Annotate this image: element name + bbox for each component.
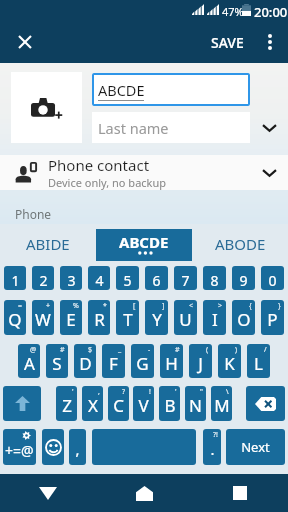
button[interactable]: R: [88, 300, 110, 335]
button[interactable]: T: [116, 300, 139, 335]
button[interactable]: 7: [174, 266, 197, 290]
button[interactable]: ABCDE: [96, 229, 192, 261]
staticText: I: [212, 308, 218, 331]
staticText: ): [235, 345, 238, 355]
button[interactable]: Z: [56, 386, 77, 421]
staticText: *: [103, 301, 107, 311]
button[interactable]: More options: [252, 24, 288, 60]
button[interactable]: J: [189, 344, 212, 378]
button[interactable]: S: [46, 344, 68, 378]
staticText: ,: [98, 387, 100, 397]
staticText: B: [164, 394, 176, 417]
button[interactable]: I: [203, 300, 226, 335]
button[interactable]: K: [218, 344, 241, 378]
button[interactable]: ABCDE: [92, 73, 250, 106]
staticText: 20:00: [254, 3, 288, 21]
staticText: 4: [95, 271, 104, 290]
staticText: A: [24, 352, 35, 375]
button[interactable]: H: [160, 344, 183, 378]
button[interactable]: A: [18, 344, 40, 378]
button[interactable]: X: [82, 386, 103, 421]
button[interactable]: 6: [145, 266, 168, 290]
button[interactable]: P: [261, 300, 284, 335]
button[interactable]: +=@: [3, 429, 36, 465]
button[interactable]: Phone contact: [0, 155, 288, 190]
staticText: Phone contact: [48, 155, 150, 175]
staticText: R: [94, 308, 105, 331]
button[interactable]: Shift: [3, 386, 41, 421]
staticText: M: [214, 394, 230, 417]
staticText: F: [109, 352, 118, 375]
button[interactable]: Add photo: [11, 72, 82, 143]
button[interactable]: Backspace: [246, 386, 285, 421]
button[interactable]: Space: [92, 429, 196, 465]
button[interactable]: 0: [261, 266, 284, 290]
button[interactable]: W: [32, 300, 54, 335]
staticText: ": [200, 387, 203, 397]
staticText: Last name: [98, 118, 169, 138]
staticText: SAVE: [211, 33, 244, 52]
button[interactable]: Close: [10, 27, 40, 57]
button[interactable]: Expand name fields: [257, 115, 282, 140]
staticText: ]: [162, 301, 165, 311]
button[interactable]: Home: [96, 474, 192, 512]
staticText: Z: [62, 394, 72, 417]
button[interactable]: ABIDE: [0, 229, 96, 261]
button[interactable]: Q: [4, 300, 26, 335]
button[interactable]: Back: [0, 474, 96, 512]
button[interactable]: 5: [116, 266, 139, 290]
button[interactable]: L: [247, 344, 270, 378]
staticText: ?!: [213, 430, 218, 440]
staticText: O: [237, 308, 251, 331]
button[interactable]: SAVE: [203, 25, 252, 60]
staticText: \: [226, 387, 229, 397]
button[interactable]: ABODE: [192, 229, 288, 261]
button[interactable]: M: [211, 386, 232, 421]
button[interactable]: F: [102, 344, 125, 378]
button[interactable]: U: [174, 300, 197, 335]
button[interactable]: 8: [203, 266, 226, 290]
button[interactable]: Y: [145, 300, 168, 335]
button[interactable]: E: [60, 300, 82, 335]
staticText: =: [18, 301, 23, 311]
button[interactable]: 4: [88, 266, 110, 290]
button[interactable]: V: [133, 386, 154, 421]
button[interactable]: 2: [32, 266, 54, 290]
button[interactable]: Emoji: [42, 429, 64, 465]
button[interactable]: 1: [4, 266, 26, 290]
staticText: >: [218, 301, 223, 311]
button[interactable]: D: [74, 344, 96, 378]
staticText: Y: [152, 308, 162, 331]
button[interactable]: G: [131, 344, 154, 378]
button[interactable]: 3: [60, 266, 82, 290]
staticText: #: [175, 345, 180, 355]
staticText: @: [30, 345, 37, 355]
staticText: 7: [181, 271, 190, 290]
staticText: Next: [241, 438, 270, 456]
button[interactable]: Recent apps: [192, 474, 288, 512]
staticText: (: [206, 345, 209, 355]
button[interactable]: C: [108, 386, 129, 421]
staticText: 2: [39, 271, 48, 290]
button[interactable]: 9: [232, 266, 255, 290]
staticText: S: [52, 352, 62, 375]
button[interactable]: Last name: [92, 112, 250, 143]
staticText: ': [175, 387, 177, 397]
staticText: H: [165, 352, 178, 375]
staticText: Device only, no backup: [48, 175, 167, 190]
staticText: 5: [123, 271, 132, 290]
staticText: <: [189, 301, 194, 311]
button[interactable]: O: [232, 300, 255, 335]
staticText: ABCDE: [119, 232, 169, 252]
staticText: 0: [268, 271, 277, 290]
staticText: 3: [67, 271, 76, 290]
staticText: V: [138, 394, 149, 417]
button[interactable]: N: [185, 386, 206, 421]
button[interactable]: ,: [69, 429, 86, 465]
staticText: -: [148, 345, 151, 355]
button[interactable]: B: [159, 386, 180, 421]
button[interactable]: Next: [226, 429, 285, 465]
staticText: U: [179, 308, 192, 331]
staticText: Q: [8, 308, 22, 331]
button[interactable]: .: [203, 429, 221, 465]
